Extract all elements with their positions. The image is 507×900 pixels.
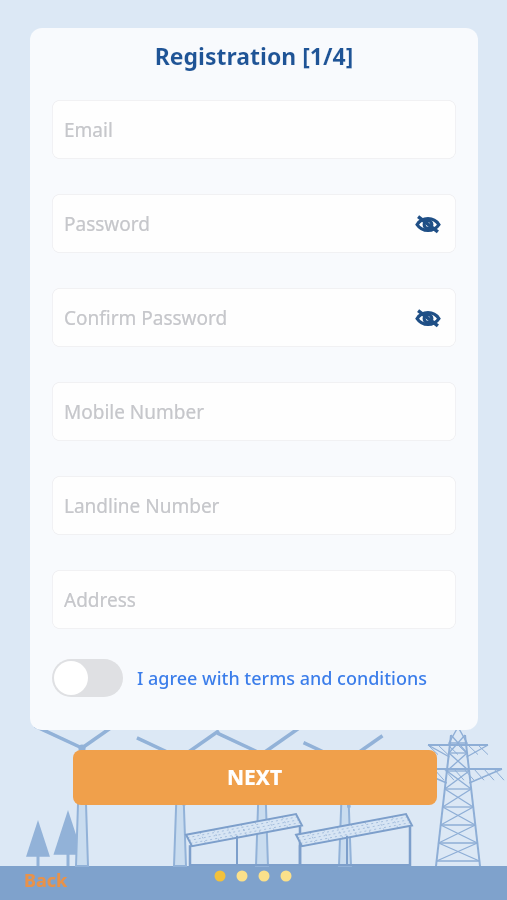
button[interactable]: Show password: [410, 206, 446, 242]
staticText: Email: [64, 117, 113, 143]
staticText: Confirm Password: [64, 305, 228, 331]
staticText: Registration [1/4]: [30, 40, 478, 71]
button[interactable]: NEXT: [73, 750, 437, 805]
button[interactable]: Mobile Number: [52, 382, 456, 441]
button[interactable]: Address: [52, 570, 456, 629]
staticText: Back: [24, 868, 68, 893]
staticText: Password: [64, 211, 150, 237]
staticText: Address: [64, 587, 136, 613]
button[interactable]: Landline Number: [52, 476, 456, 535]
button[interactable]: Email: [52, 100, 456, 159]
button[interactable]: Confirm Password: [52, 288, 456, 347]
button[interactable]: I agree with terms and conditions: [52, 659, 428, 697]
staticText: Landline Number: [64, 493, 220, 519]
button[interactable]: Show password: [410, 300, 446, 336]
staticText: NEXT: [227, 763, 283, 792]
button[interactable]: Back: [24, 868, 68, 893]
staticText: I agree with terms and conditions: [137, 666, 428, 691]
staticText: Mobile Number: [64, 399, 205, 425]
button[interactable]: Password: [52, 194, 456, 253]
